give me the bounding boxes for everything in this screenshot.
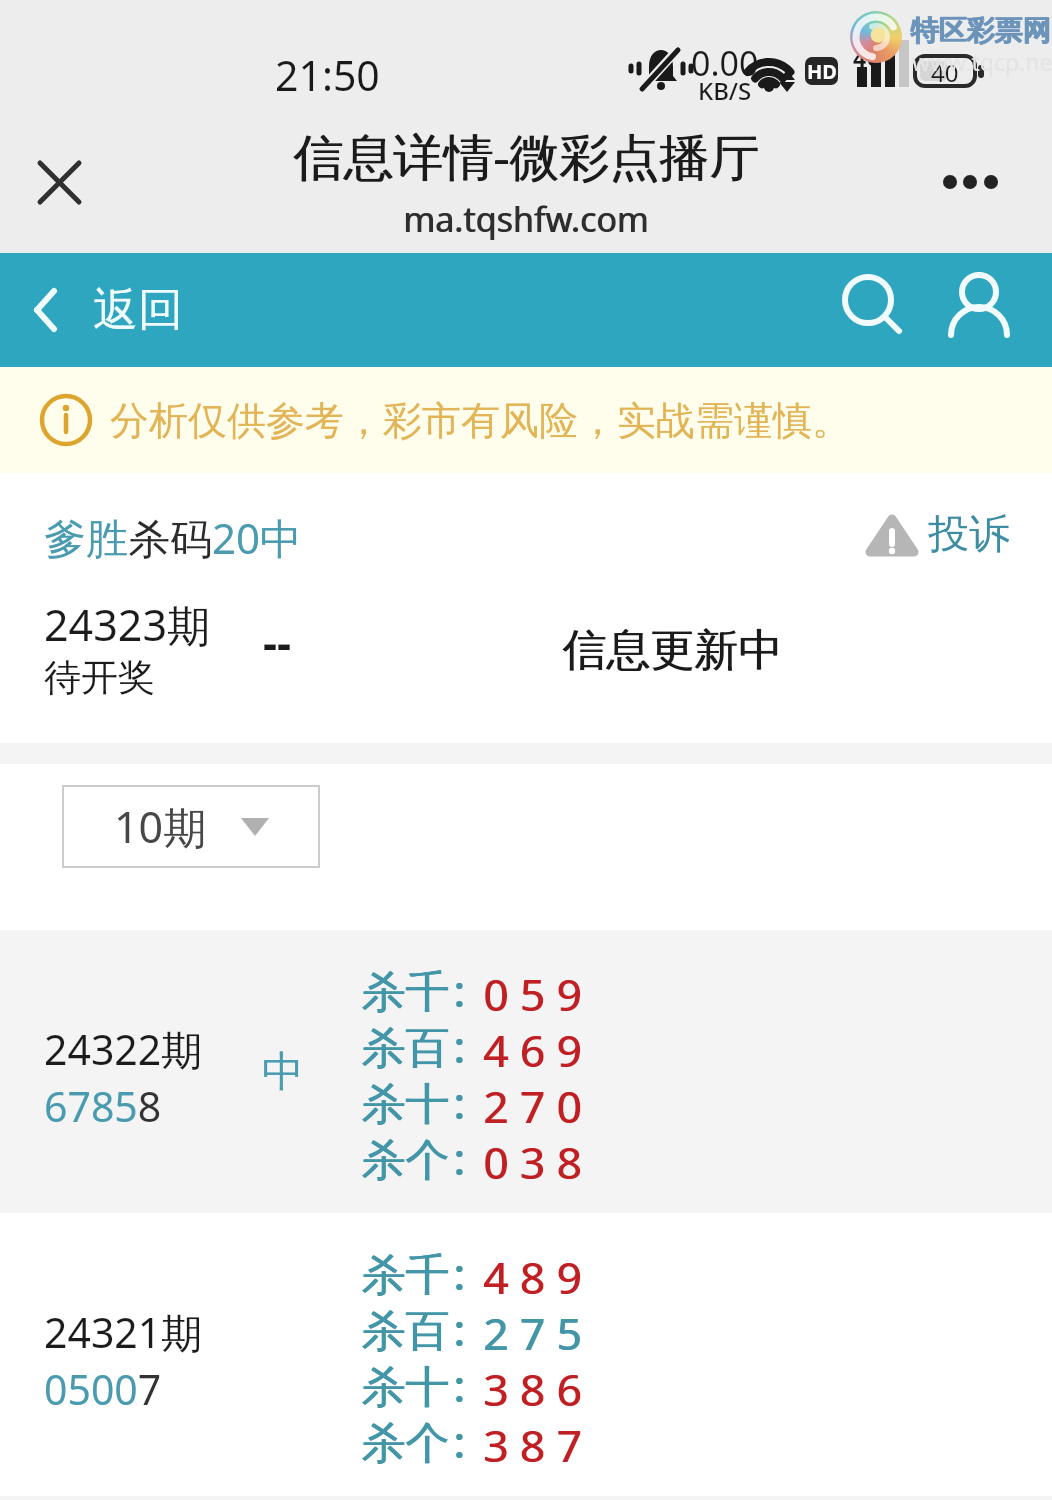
staticText: 21:50 [275, 47, 380, 103]
staticText: : [454, 960, 466, 1016]
staticText: 中 [262, 1046, 304, 1099]
staticText: 0.00 [691, 40, 759, 86]
staticText: 2 7 0 [484, 1076, 583, 1132]
button[interactable]: 24321期 [0, 1213, 1052, 1496]
staticText: 4G [853, 42, 883, 73]
staticText: HD [807, 58, 837, 85]
staticText: 05007 [44, 1361, 162, 1417]
staticText: 分析仅供参考，彩市有风险，实战需谨慎。 [110, 396, 851, 445]
staticText: 信息更新中 [562, 623, 782, 678]
staticText: 特区彩票网 [911, 13, 1051, 48]
staticText: : [453, 1243, 465, 1299]
staticText: 杀千 [362, 965, 450, 1020]
staticText: : [453, 1128, 465, 1184]
staticText: 待开奖 [44, 654, 155, 701]
staticText: 杀千 [362, 1248, 450, 1303]
staticText: 杀千 [361, 1248, 449, 1303]
staticText: 24322期 [44, 1021, 203, 1077]
staticText: : [453, 960, 465, 1016]
staticText: 4 8 9 [484, 1247, 583, 1303]
staticText: : [454, 1128, 466, 1184]
staticText: 杀十 [361, 1077, 449, 1132]
staticText: 0 5 9 [484, 964, 583, 1020]
staticText: : [454, 1072, 466, 1128]
staticText: 4 6 9 [484, 1020, 583, 1076]
button[interactable]: Search [840, 271, 918, 349]
staticText: 杀千 [361, 965, 449, 1020]
staticText: 返回 [93, 282, 183, 339]
staticText: 信息详情-微彩点播厅 [294, 122, 761, 190]
button[interactable]: 投诉 [862, 509, 1010, 561]
staticText: ma.tqshfw.com [403, 196, 649, 242]
staticText: 3 8 7 [484, 1415, 583, 1471]
staticText: 4 6 9 [483, 1020, 582, 1076]
staticText: 0 3 8 [483, 1132, 582, 1188]
staticText: 信息详情-微彩点播厅 [293, 122, 760, 190]
staticText: ma.tqshfw.com [404, 196, 650, 242]
staticText: 杀百 [361, 1021, 449, 1076]
staticText: 0 3 8 [484, 1132, 583, 1188]
staticText: 2 7 0 [483, 1076, 582, 1132]
staticText: : [453, 1016, 465, 1072]
staticText: 24321期 [44, 1304, 203, 1360]
button[interactable]: More options [928, 152, 1018, 212]
staticText: 2 7 5 [484, 1303, 583, 1359]
staticText: 杀个 [361, 1416, 449, 1471]
staticText: 特区彩票网 [910, 13, 1050, 48]
staticText: 投诉 [928, 509, 1010, 561]
staticText: 杀十 [362, 1360, 450, 1415]
staticText: 爹胜杀码20中 [44, 509, 303, 566]
staticText: 10期 [114, 797, 207, 856]
staticText: 67858 [44, 1078, 162, 1134]
staticText: : [454, 1299, 466, 1355]
staticText: 杀百 [362, 1304, 450, 1359]
staticText: 信息更新中 [563, 623, 783, 678]
staticText: 杀个 [361, 1133, 449, 1188]
staticText: : [453, 1411, 465, 1467]
staticText: 杀百 [362, 1021, 450, 1076]
staticText: 3 8 7 [483, 1415, 582, 1471]
button[interactable]: 10期 [62, 785, 320, 868]
staticText: 3 8 6 [483, 1359, 582, 1415]
button[interactable]: Account [948, 271, 1026, 349]
staticText: 24323期 [44, 595, 210, 654]
staticText: 杀十 [362, 1077, 450, 1132]
staticText: : [453, 1072, 465, 1128]
staticText: -- [263, 612, 292, 672]
staticText: : [453, 1299, 465, 1355]
staticText: 杀个 [362, 1133, 450, 1188]
staticText: 杀百 [361, 1304, 449, 1359]
staticText: : [454, 1411, 466, 1467]
staticText: 4 8 9 [483, 1247, 582, 1303]
button[interactable]: Close [20, 145, 98, 219]
staticText: 2 7 5 [483, 1303, 582, 1359]
staticText: : [454, 1016, 466, 1072]
staticText: : [453, 1355, 465, 1411]
staticText: KB/S [698, 74, 752, 107]
staticText: : [454, 1355, 466, 1411]
staticText: : [454, 1243, 466, 1299]
staticText: 杀个 [362, 1416, 450, 1471]
staticText: www.tqcp.net [912, 46, 1052, 77]
button[interactable]: 24322期 [0, 930, 1052, 1213]
staticText: 3 8 6 [484, 1359, 583, 1415]
staticText: 40 [931, 56, 959, 86]
staticText: 杀十 [361, 1360, 449, 1415]
staticText: 0 5 9 [483, 964, 582, 1020]
button[interactable]: 返回 [33, 282, 183, 339]
